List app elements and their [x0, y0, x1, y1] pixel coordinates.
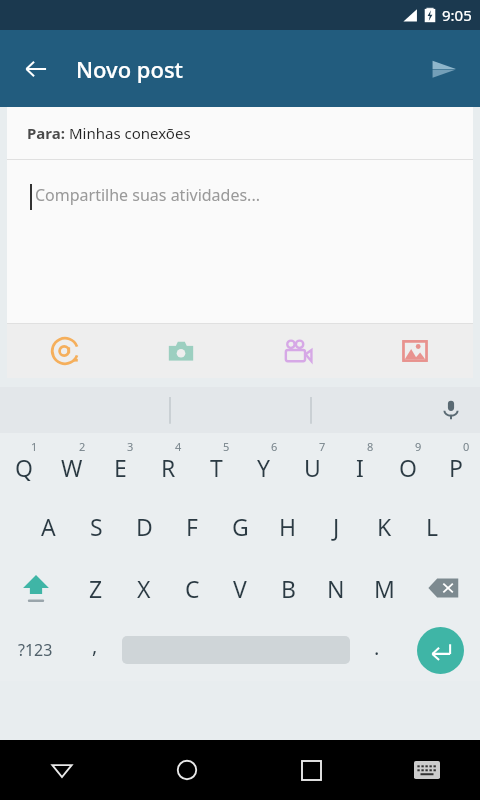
staticText: G: [232, 511, 249, 542]
staticText: N: [327, 573, 345, 604]
button[interactable]: ?123: [0, 619, 71, 681]
staticText: Compartilhe suas atividades...: [35, 184, 260, 206]
staticText: 2: [79, 439, 86, 454]
button[interactable]: Z: [72, 557, 120, 619]
button[interactable]: Mention: [7, 324, 123, 378]
button[interactable]: .: [353, 619, 400, 681]
button[interactable]: 9: [384, 433, 432, 495]
staticText: T: [210, 452, 223, 483]
button[interactable]: Camera: [123, 324, 239, 378]
staticText: 3: [127, 439, 134, 454]
button[interactable]: C: [168, 557, 216, 619]
button[interactable]: 4: [144, 433, 192, 495]
staticText: 0: [463, 439, 470, 454]
button[interactable]: 8: [336, 433, 384, 495]
button[interactable]: Space: [118, 619, 353, 681]
button[interactable]: F: [168, 495, 216, 557]
button[interactable]: L: [408, 495, 456, 557]
button[interactable]: Voice input: [431, 390, 471, 430]
button[interactable]: 2: [48, 433, 96, 495]
button[interactable]: 1: [0, 433, 48, 495]
button[interactable]: Keyboard: [374, 740, 480, 800]
staticText: ?123: [18, 639, 53, 661]
button[interactable]: Para:: [7, 107, 473, 159]
button[interactable]: B: [264, 557, 312, 619]
staticText: Z: [89, 573, 103, 604]
button[interactable]: Image: [356, 324, 473, 378]
button[interactable]: 7: [288, 433, 336, 495]
staticText: O: [399, 452, 417, 483]
button[interactable]: Backspace: [408, 557, 480, 619]
staticText: E: [114, 452, 127, 483]
staticText: 9:05: [442, 5, 472, 25]
staticText: B: [281, 573, 296, 604]
button[interactable]: 3: [96, 433, 144, 495]
staticText: 5: [223, 439, 230, 454]
button[interactable]: ,: [71, 619, 118, 681]
staticText: P: [449, 452, 463, 483]
button[interactable]: N: [312, 557, 360, 619]
staticText: 4: [175, 439, 182, 454]
staticText: Para:: [27, 123, 69, 143]
button[interactable]: 5: [192, 433, 240, 495]
button[interactable]: Compartilhe suas atividades...: [7, 160, 473, 323]
staticText: M: [374, 573, 395, 604]
button[interactable]: Back: [14, 47, 58, 91]
staticText: I: [356, 452, 364, 483]
button[interactable]: V: [216, 557, 264, 619]
staticText: V: [233, 573, 247, 604]
staticText: 1: [31, 439, 38, 454]
button[interactable]: Video: [239, 324, 356, 378]
staticText: 6: [271, 439, 278, 454]
button[interactable]: H: [264, 495, 312, 557]
button[interactable]: D: [120, 495, 168, 557]
staticText: S: [90, 511, 103, 542]
staticText: L: [426, 511, 439, 542]
staticText: W: [61, 452, 83, 483]
button[interactable]: S: [72, 495, 120, 557]
staticText: D: [136, 511, 153, 542]
button[interactable]: M: [360, 557, 408, 619]
staticText: 8: [367, 439, 374, 454]
staticText: U: [304, 452, 321, 483]
staticText: Y: [257, 452, 271, 483]
staticText: R: [161, 452, 176, 483]
staticText: 9: [415, 439, 422, 454]
staticText: X: [137, 573, 151, 604]
button[interactable]: Back: [0, 740, 124, 800]
button[interactable]: Recents: [249, 740, 374, 800]
staticText: Novo post: [76, 54, 184, 84]
staticText: .: [374, 634, 380, 661]
staticText: Q: [15, 452, 33, 483]
button[interactable]: Enter: [400, 619, 480, 681]
button[interactable]: 0: [432, 433, 480, 495]
staticText: 7: [319, 439, 326, 454]
staticText: J: [333, 511, 340, 542]
button[interactable]: Home: [124, 740, 249, 800]
staticText: K: [377, 511, 392, 542]
button[interactable]: A: [24, 495, 72, 557]
staticText: H: [279, 511, 297, 542]
staticText: C: [185, 573, 200, 604]
button[interactable]: Send: [420, 45, 468, 93]
staticText: Minhas conexões: [69, 123, 191, 143]
staticText: A: [41, 511, 56, 542]
staticText: F: [186, 511, 198, 542]
staticText: ,: [92, 632, 98, 659]
button[interactable]: X: [120, 557, 168, 619]
button[interactable]: J: [312, 495, 360, 557]
button[interactable]: Shift: [0, 557, 72, 619]
button[interactable]: G: [216, 495, 264, 557]
button[interactable]: 6: [240, 433, 288, 495]
button[interactable]: K: [360, 495, 408, 557]
